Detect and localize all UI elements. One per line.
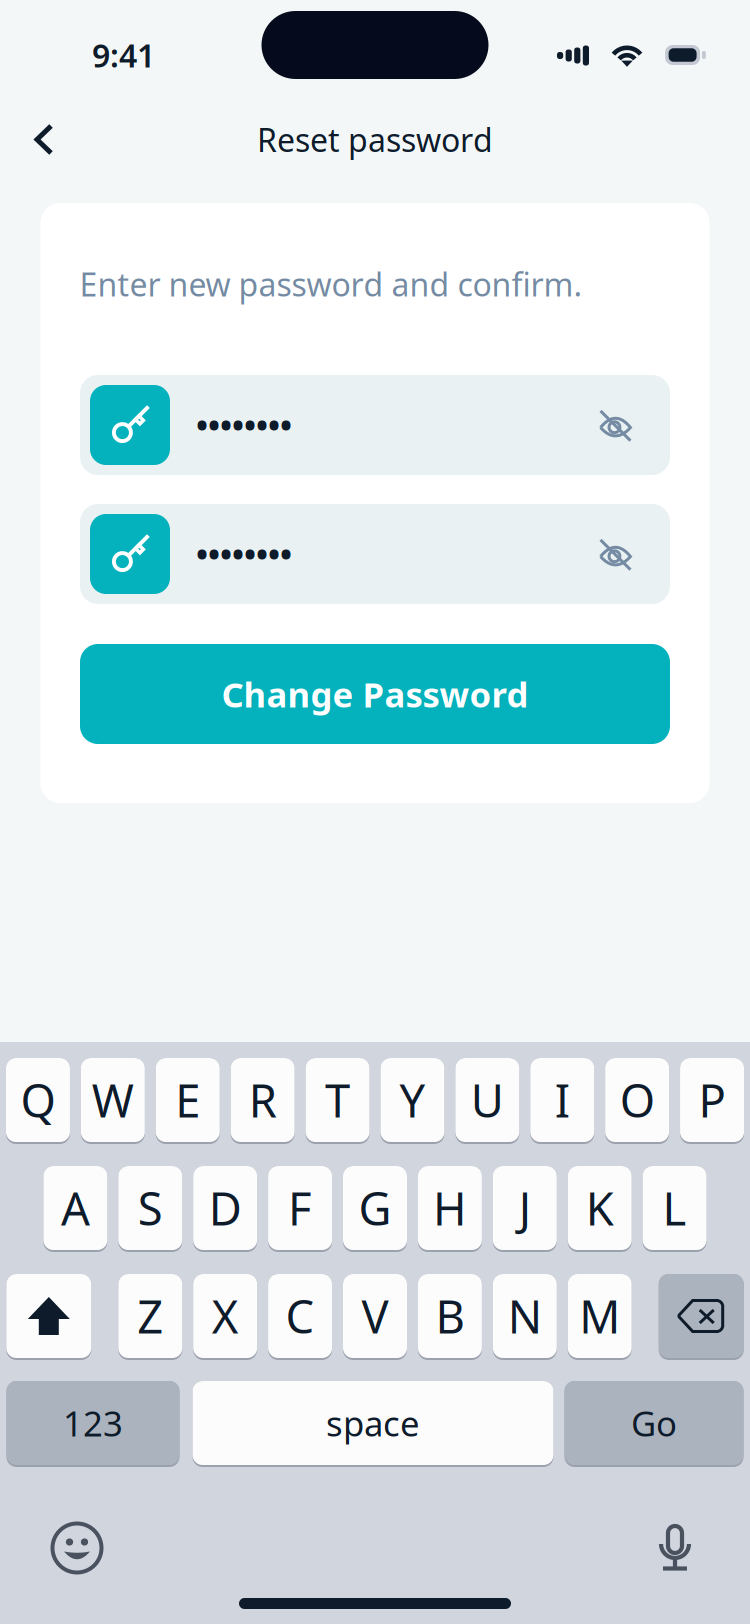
button[interactable]: M [568, 1274, 632, 1358]
staticText: •••••••• [196, 533, 292, 575]
staticText: G [358, 1178, 391, 1238]
staticText: C [286, 1286, 315, 1346]
staticText: I [555, 1070, 570, 1130]
staticText: A [61, 1178, 90, 1238]
staticText: O [620, 1070, 655, 1130]
staticText: D [209, 1178, 242, 1238]
staticText: N [508, 1286, 542, 1346]
button[interactable]: L [643, 1166, 707, 1250]
button[interactable]: A [43, 1166, 107, 1250]
staticText: M [579, 1286, 620, 1346]
button[interactable]: Emoji keyboard [41, 1515, 113, 1581]
button[interactable]: F [268, 1166, 332, 1250]
button[interactable]: Show password [561, 504, 670, 604]
staticText: V [361, 1286, 388, 1346]
button[interactable]: R [231, 1058, 295, 1142]
button[interactable]: U [455, 1058, 519, 1142]
staticText: E [175, 1070, 200, 1130]
button[interactable]: Z [118, 1274, 182, 1358]
staticText: W [92, 1070, 134, 1130]
button[interactable]: O [605, 1058, 669, 1142]
button[interactable]: space [192, 1381, 553, 1465]
button[interactable]: N [493, 1274, 557, 1358]
button[interactable]: S [118, 1166, 182, 1250]
button[interactable]: Show password [561, 375, 670, 475]
button[interactable]: D [193, 1166, 257, 1250]
staticText: F [288, 1178, 312, 1238]
button[interactable]: W [81, 1058, 145, 1142]
staticText: Change Password [221, 671, 528, 717]
staticText: 9:41 [92, 34, 155, 76]
staticText: •••••••• [196, 404, 292, 446]
staticText: B [435, 1286, 464, 1346]
staticText: L [663, 1178, 687, 1238]
button[interactable]: P [680, 1058, 744, 1142]
button[interactable]: J [493, 1166, 557, 1250]
button[interactable]: Change Password [80, 644, 670, 744]
button[interactable]: B [418, 1274, 482, 1358]
staticText: R [249, 1070, 277, 1130]
staticText: Q [20, 1070, 55, 1130]
staticText: Enter new password and confirm. [79, 263, 582, 305]
staticText: Y [399, 1070, 425, 1130]
button[interactable]: Go [564, 1381, 743, 1465]
button[interactable]: Dictation [639, 1515, 711, 1581]
staticText: Reset password [257, 118, 493, 161]
button[interactable]: Y [380, 1058, 444, 1142]
staticText: space [326, 1400, 420, 1446]
staticText: K [586, 1178, 614, 1238]
button[interactable]: T [306, 1058, 370, 1142]
button[interactable]: Back [0, 104, 88, 174]
staticText: X [212, 1286, 239, 1346]
button[interactable]: H [418, 1166, 482, 1250]
button[interactable]: G [343, 1166, 407, 1250]
button[interactable]: I [530, 1058, 594, 1142]
button[interactable]: K [568, 1166, 632, 1250]
staticText: Z [137, 1286, 163, 1346]
button[interactable]: C [268, 1274, 332, 1358]
staticText: 123 [63, 1400, 123, 1446]
button[interactable]: E [156, 1058, 220, 1142]
staticText: S [138, 1178, 163, 1238]
staticText: P [698, 1070, 725, 1130]
button[interactable]: Shift [6, 1274, 91, 1358]
button[interactable]: V [343, 1274, 407, 1358]
staticText: Go [631, 1400, 677, 1446]
button[interactable]: Q [6, 1058, 70, 1142]
button[interactable]: 123 [6, 1381, 179, 1465]
button[interactable]: X [193, 1274, 257, 1358]
staticText: J [519, 1178, 531, 1238]
staticText: U [471, 1070, 504, 1130]
staticText: T [325, 1070, 350, 1130]
button[interactable]: Delete [659, 1274, 744, 1358]
staticText: H [433, 1178, 467, 1238]
